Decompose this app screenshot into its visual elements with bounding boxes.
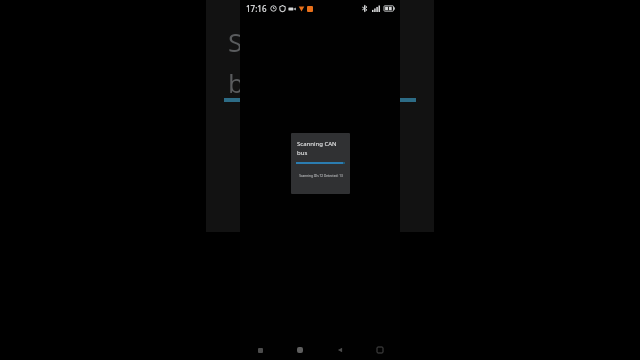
staticText: Scanning IDs 72 Detected: 13 — [299, 174, 343, 178]
button[interactable]: Menu — [240, 340, 280, 360]
button[interactable]: Home — [280, 340, 320, 360]
staticText: 17:16 — [246, 3, 267, 14]
staticText: Scanning CAN — [228, 24, 400, 59]
button[interactable]: Back — [320, 340, 360, 360]
button[interactable]: Recent apps — [360, 340, 400, 360]
staticText: bus — [228, 65, 273, 100]
staticText: bus — [297, 149, 308, 157]
button[interactable]: Scanning CAN — [291, 133, 350, 194]
staticText: Scanning CAN — [297, 140, 337, 148]
